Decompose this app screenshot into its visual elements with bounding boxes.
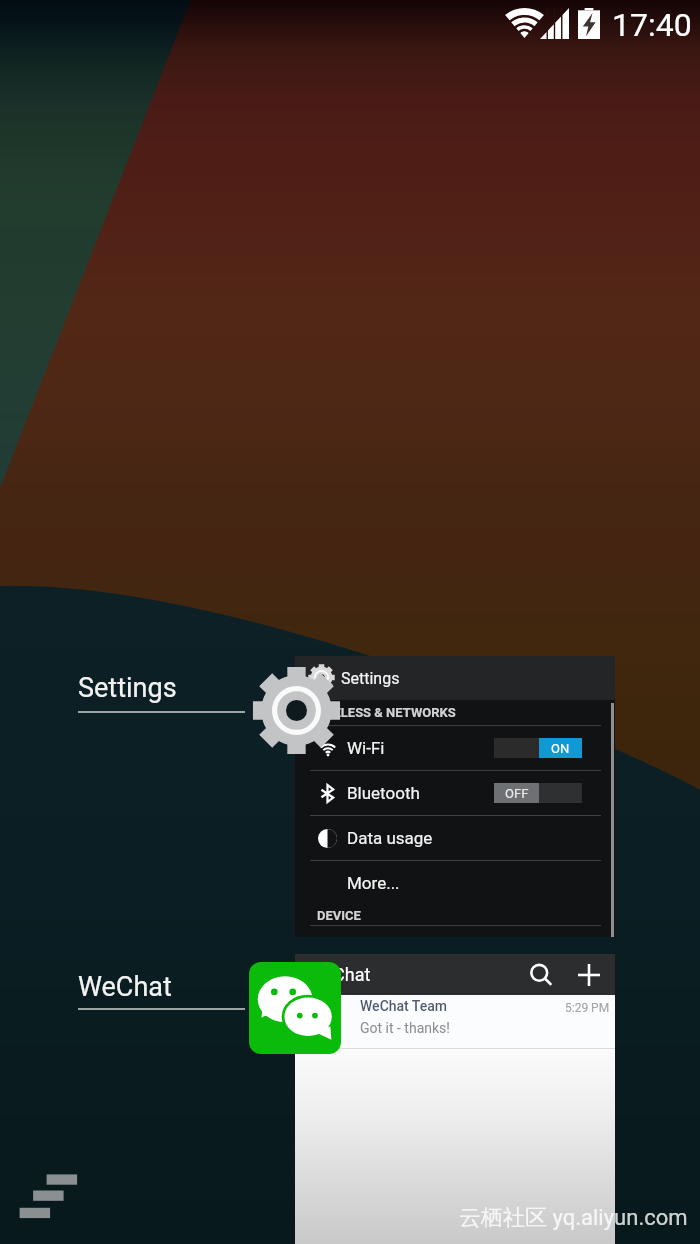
staticText: WeChat Team: [360, 998, 448, 1014]
staticText: Bluetooth: [347, 783, 420, 803]
staticText: 5:29 PM: [565, 1001, 610, 1015]
button[interactable]: WeChat: [249, 962, 341, 1054]
staticText: Settings: [78, 672, 177, 704]
staticText: Wi-Fi: [347, 738, 385, 758]
staticText: Settings: [341, 669, 400, 688]
button[interactable]: Settings: [295, 656, 615, 937]
button[interactable]: WeChat Team: [295, 995, 615, 1048]
button[interactable]: Chat: [295, 954, 615, 1244]
staticText: Data usage: [347, 828, 433, 848]
button[interactable]: More...: [295, 861, 615, 905]
button[interactable]: Wi-Fi: [295, 726, 615, 770]
staticText: More...: [347, 873, 400, 893]
button[interactable]: Recent apps: [8, 1162, 90, 1230]
button[interactable]: Search: [523, 957, 559, 993]
staticText: Chat: [333, 964, 371, 985]
button[interactable]: Bluetooth: [295, 771, 615, 815]
staticText: WIRELESS & NETWORKS: [310, 705, 456, 720]
staticText: DEVICE: [317, 908, 361, 923]
staticText: 17:40: [612, 6, 692, 44]
staticText: 云栖社区 yq.aliyun.com: [459, 1204, 688, 1232]
staticText: WeChat: [78, 971, 172, 1003]
staticText: Got it - thanks!: [360, 1020, 450, 1036]
staticText: ON: [551, 741, 570, 756]
button[interactable]: Data usage: [295, 816, 615, 860]
button[interactable]: Add: [571, 957, 607, 993]
staticText: OFF: [505, 786, 529, 801]
